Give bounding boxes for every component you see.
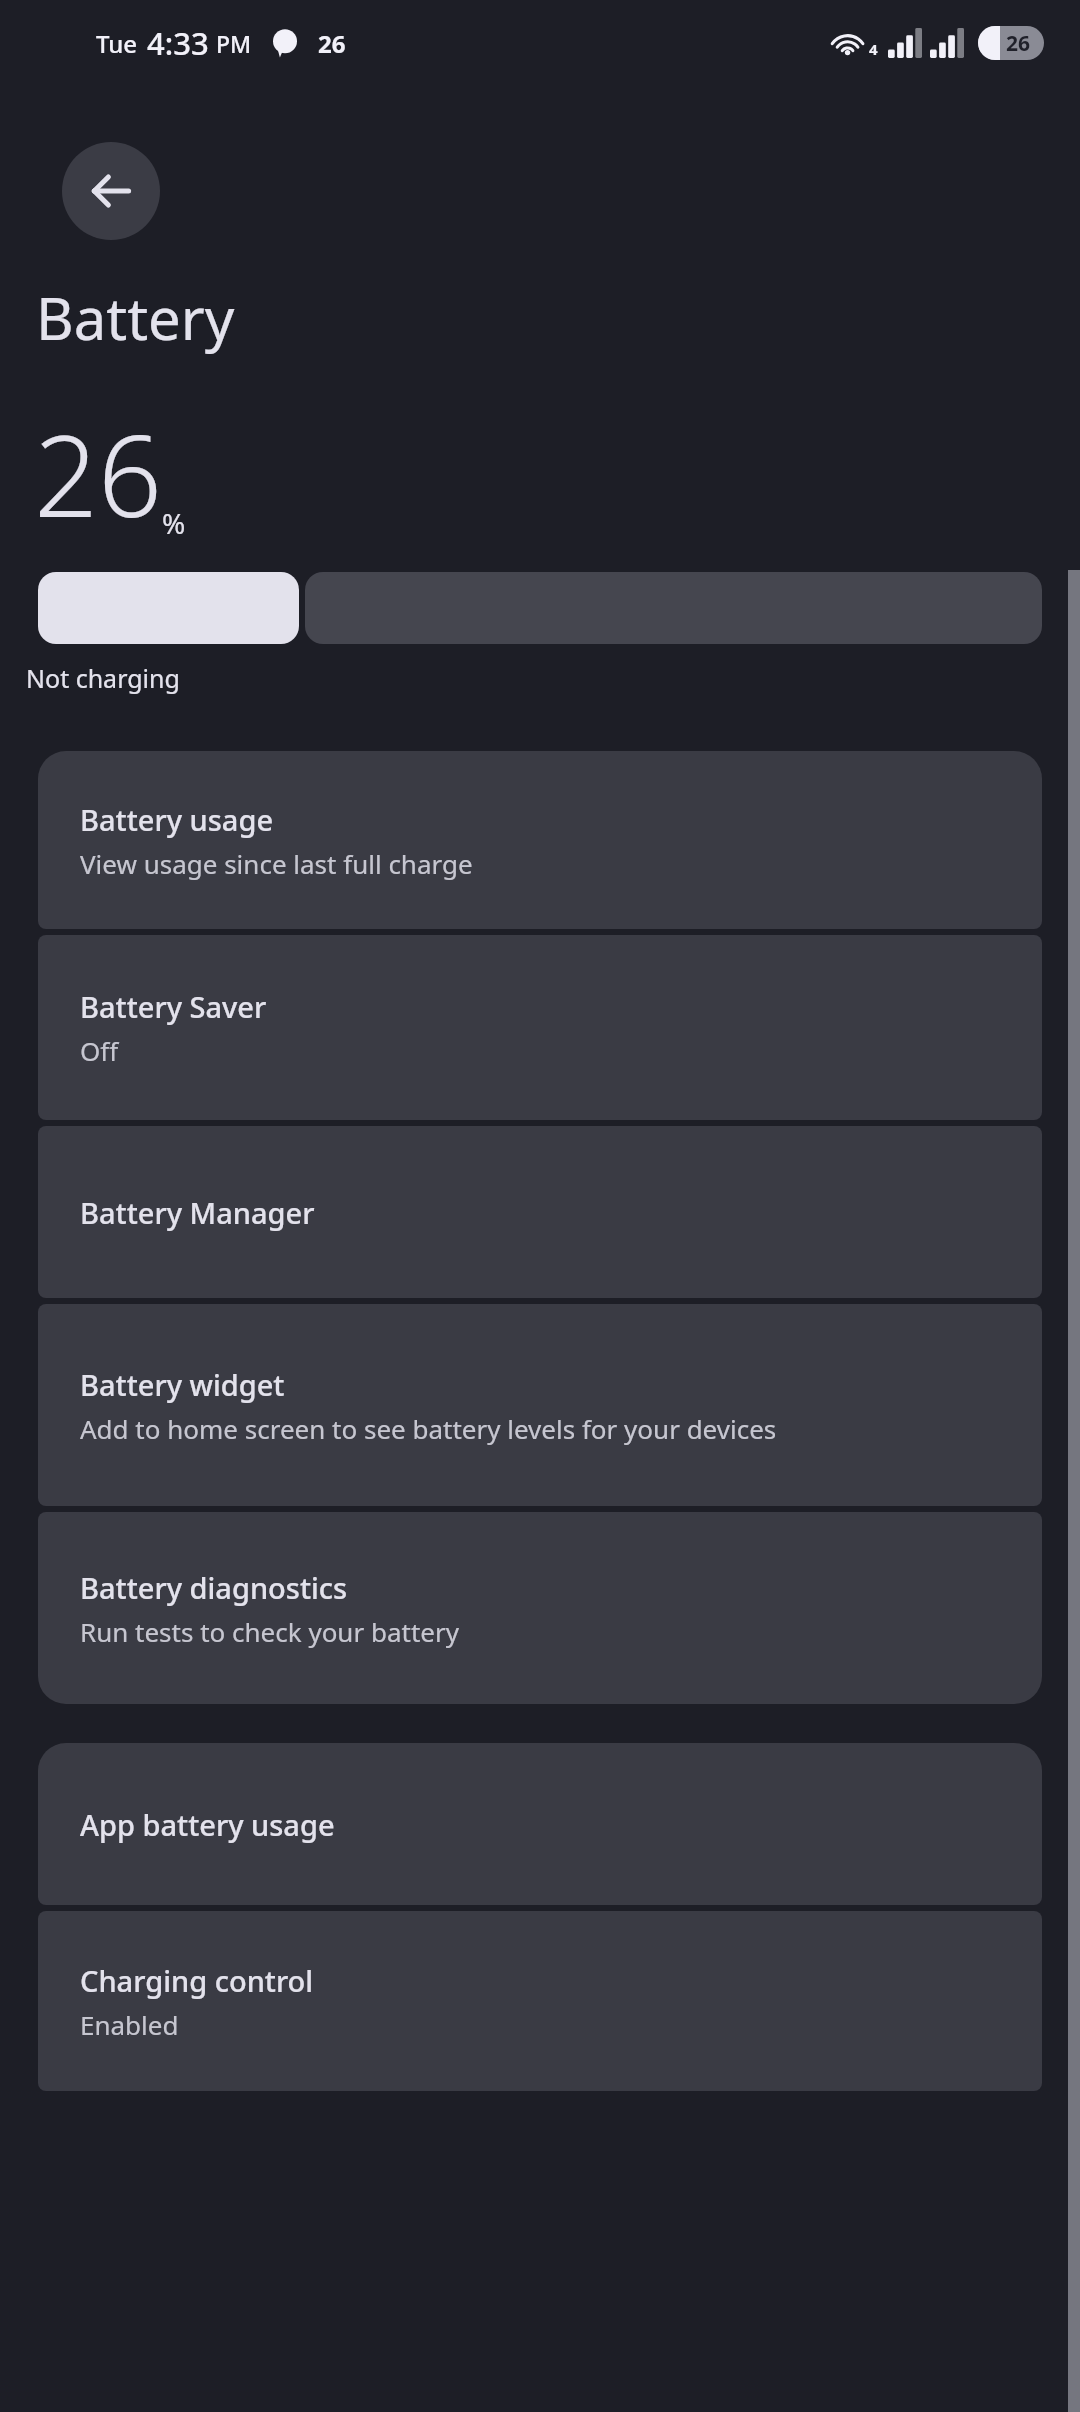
button[interactable]: Battery Manager: [38, 1126, 1042, 1298]
staticText: View usage since last full charge: [80, 846, 473, 881]
staticText: Battery widget: [80, 1365, 285, 1404]
staticText: 26: [318, 27, 346, 60]
staticText: Run tests to check your battery: [80, 1614, 459, 1649]
staticText: 4:33: [147, 22, 209, 64]
button[interactable]: Battery widget: [38, 1304, 1042, 1506]
staticText: Charging control: [80, 1961, 314, 2000]
button[interactable]: Battery Saver: [38, 935, 1042, 1120]
staticText: Not charging: [26, 661, 180, 695]
staticText: 4: [869, 39, 878, 59]
staticText: Battery usage: [80, 800, 274, 839]
staticText: %: [162, 504, 186, 542]
staticText: Off: [80, 1033, 119, 1068]
staticText: Tue: [96, 27, 138, 60]
staticText: App battery usage: [80, 1805, 335, 1844]
staticText: Battery diagnostics: [80, 1568, 348, 1607]
button[interactable]: Battery diagnostics: [38, 1512, 1042, 1704]
staticText: Battery Manager: [80, 1193, 315, 1232]
button[interactable]: Charging control: [38, 1911, 1042, 2091]
staticText: Enabled: [80, 2007, 179, 2042]
staticText: Battery: [36, 278, 235, 357]
button[interactable]: Battery usage: [38, 751, 1042, 929]
staticText: 26: [1006, 29, 1031, 58]
staticText: PM: [216, 28, 252, 59]
staticText: Add to home screen to see battery levels…: [80, 1411, 777, 1446]
button[interactable]: App battery usage: [38, 1743, 1042, 1905]
staticText: Battery Saver: [80, 987, 267, 1026]
staticText: 26: [34, 397, 162, 550]
button[interactable]: Back: [62, 142, 160, 240]
